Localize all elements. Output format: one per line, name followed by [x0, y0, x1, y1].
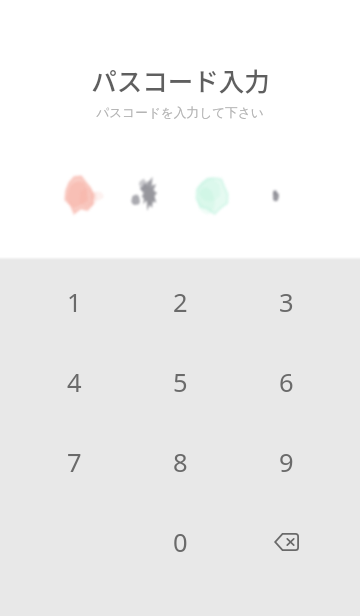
button[interactable]: 5 [127, 342, 233, 422]
button[interactable]: 8 [127, 422, 233, 502]
button[interactable]: 0 [127, 502, 233, 582]
staticText: 9 [279, 445, 294, 480]
button[interactable]: 1 [21, 262, 127, 342]
staticText: 4 [67, 365, 82, 400]
button[interactable]: 6 [233, 342, 339, 422]
staticText: パスコード入力 [91, 61, 270, 98]
staticText: 2 [173, 285, 188, 320]
button[interactable]: 9 [233, 422, 339, 502]
button[interactable]: 4 [21, 342, 127, 422]
button[interactable]: 2 [127, 262, 233, 342]
staticText: 1 [67, 285, 82, 320]
button[interactable]: 3 [233, 262, 339, 342]
staticText: 5 [173, 365, 188, 400]
button[interactable]: 7 [21, 422, 127, 502]
staticText: 6 [279, 365, 294, 400]
staticText: 7 [67, 445, 82, 480]
staticText: パスコードを入力して下さい [96, 105, 264, 121]
staticText: 3 [279, 285, 294, 320]
staticText: 8 [173, 445, 188, 480]
button[interactable]: Backspace [233, 502, 339, 582]
staticText: 0 [173, 525, 188, 560]
